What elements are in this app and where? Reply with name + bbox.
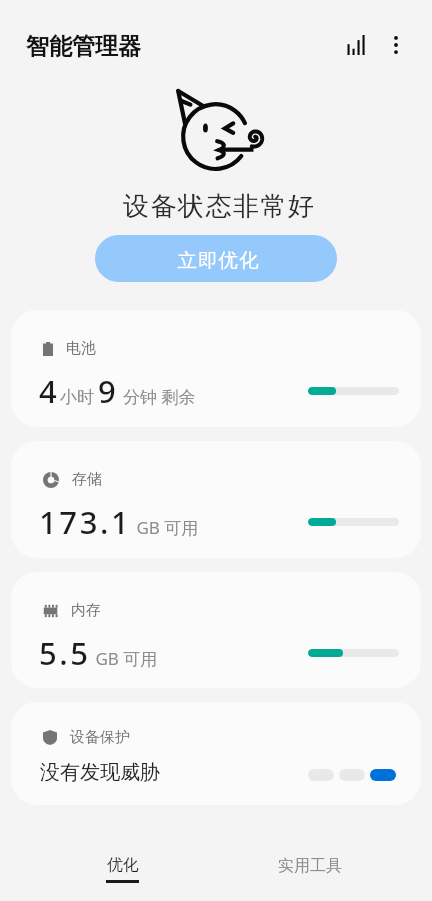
staticText: 5.5 — [39, 632, 91, 674]
button[interactable]: More options — [375, 24, 416, 65]
staticText: 内存 — [71, 601, 101, 620]
staticText: 立即优化 — [177, 248, 259, 273]
button[interactable]: 实用工具 — [272, 849, 348, 889]
staticText: 优化 — [107, 855, 139, 875]
button[interactable]: 电池 — [11, 310, 421, 427]
staticText: 分钟 剩余 — [123, 385, 196, 408]
staticText: 设备状态非常好 — [123, 190, 316, 223]
staticText: 实用工具 — [278, 856, 342, 876]
staticText: GB 可用 — [91, 647, 158, 670]
button[interactable]: 立即优化 — [95, 235, 337, 282]
staticText: 智能管理器 — [26, 32, 141, 61]
staticText: 173.1 — [39, 501, 132, 543]
staticText: 小时 — [60, 387, 94, 408]
button[interactable]: 内存 — [11, 572, 421, 688]
staticText: 电池 — [66, 339, 96, 358]
staticText: 没有发现威胁 — [40, 760, 160, 785]
staticText: 存储 — [72, 470, 102, 489]
staticText: 9 — [98, 370, 119, 412]
button[interactable]: 存储 — [11, 441, 421, 558]
button[interactable]: Usage statistics — [335, 24, 376, 65]
staticText: GB 可用 — [132, 516, 199, 539]
button[interactable]: 优化 — [90, 849, 155, 895]
staticText: 4 — [39, 370, 60, 412]
button[interactable]: 设备保护 — [11, 702, 421, 805]
staticText: 设备保护 — [70, 728, 130, 747]
